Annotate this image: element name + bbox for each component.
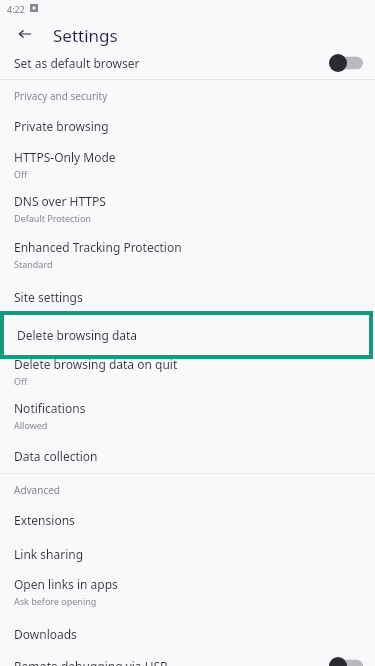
staticText: Notifications — [14, 400, 86, 416]
staticText: Extensions — [14, 512, 75, 528]
button[interactable]: Link sharing — [0, 540, 375, 568]
staticText: Data collection — [14, 448, 98, 464]
staticText: Default Protection — [14, 212, 91, 224]
staticText: Site settings — [14, 289, 83, 305]
staticText: Allowed — [14, 419, 48, 430]
button[interactable]: Downloads — [0, 620, 375, 648]
staticText: Settings — [53, 24, 118, 47]
button[interactable]: Back — [10, 19, 40, 49]
staticText: Ask before opening — [14, 595, 97, 607]
staticText: HTTPS-Only Mode — [14, 149, 116, 165]
staticText: Advanced — [14, 483, 60, 497]
staticText: 4:22 — [7, 3, 25, 15]
staticText: Off — [14, 168, 28, 180]
button[interactable]: Open links in apps — [0, 575, 375, 607]
staticText: Delete browsing data — [17, 327, 138, 343]
button[interactable]: HTTPS-Only Mode — [0, 148, 375, 180]
button[interactable]: Data collection — [0, 443, 375, 469]
staticText: Downloads — [14, 626, 77, 642]
staticText: Off — [14, 375, 28, 386]
button[interactable]: Extensions — [0, 506, 375, 534]
staticText: Link sharing — [14, 546, 84, 562]
button[interactable]: Remote debugging via USB — [0, 652, 375, 666]
staticText: Open links in apps — [14, 576, 118, 592]
staticText: Privacy and security — [14, 89, 108, 103]
button[interactable]: Notifications — [0, 400, 375, 430]
button[interactable]: Set as default browser — [0, 50, 375, 76]
staticText: Private browsing — [14, 118, 109, 134]
staticText: Set as default browser — [14, 55, 140, 71]
button[interactable]: Private browsing — [0, 112, 375, 140]
staticText: DNS over HTTPS — [14, 193, 106, 209]
button[interactable]: DNS over HTTPS — [0, 192, 375, 224]
button[interactable]: Enhanced Tracking Protection — [0, 238, 375, 270]
staticText: Delete browsing data on quit — [14, 356, 178, 372]
staticText: Remote debugging via USB — [14, 658, 168, 666]
button[interactable]: Delete browsing data — [0, 311, 373, 359]
staticText: Enhanced Tracking Protection — [14, 239, 182, 255]
staticText: Standard — [14, 258, 53, 270]
button[interactable]: Delete browsing data on quit — [0, 356, 375, 386]
button[interactable]: Site settings — [0, 283, 375, 311]
